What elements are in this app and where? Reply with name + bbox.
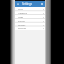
button[interactable]: Display (15, 23, 45, 27)
staticText: Settings (22, 2, 32, 6)
staticText: Sound (18, 20, 25, 23)
staticText: Network (18, 12, 27, 15)
staticText: Display (18, 24, 26, 27)
staticText: Apps (18, 16, 24, 19)
button[interactable]: Network (15, 11, 45, 15)
staticText: Wi-Fi (18, 8, 24, 11)
button[interactable]: Wi-Fi (15, 7, 45, 11)
button[interactable]: Navigate up (17, 3, 19, 5)
button[interactable]: Security (15, 27, 45, 30)
button[interactable]: Sound (15, 19, 45, 23)
button[interactable]: Apps (15, 15, 45, 19)
staticText: Security (18, 27, 27, 30)
